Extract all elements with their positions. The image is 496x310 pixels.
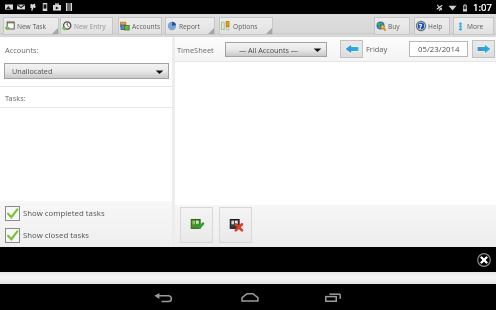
button[interactable]: ?	[414, 17, 450, 35]
staticText: Friday	[366, 44, 388, 54]
button[interactable]: New Entry	[60, 17, 113, 35]
button[interactable]: 05/23/2014	[409, 41, 468, 57]
button[interactable]: Home	[240, 284, 260, 310]
button[interactable]: Start timer	[180, 207, 213, 243]
button[interactable]: — All Accounts —	[225, 42, 327, 57]
staticText: Unallocated	[12, 66, 53, 76]
staticText: ?	[419, 22, 423, 31]
staticText: Show completed tasks	[23, 208, 105, 219]
staticText: — All Accounts —	[239, 45, 299, 55]
button[interactable]: Report	[165, 17, 215, 35]
staticText: Show closed tasks	[23, 230, 90, 241]
button[interactable]: Show completed tasks	[5, 206, 172, 221]
button[interactable]: Accounts	[118, 17, 162, 35]
button[interactable]: New Task	[3, 17, 59, 35]
staticText: Accounts	[132, 22, 161, 31]
staticText: TimeSheet	[177, 45, 214, 55]
staticText: New Entry	[74, 22, 106, 31]
button[interactable]: More	[453, 17, 494, 35]
button[interactable]: Recents	[323, 284, 343, 310]
button[interactable]: Back	[153, 284, 173, 310]
staticText: Report	[179, 22, 200, 31]
button[interactable]: Show closed tasks	[5, 228, 172, 243]
button[interactable]: Next day	[472, 40, 495, 58]
button[interactable]: Stop timer	[219, 207, 252, 243]
staticText: 1:07	[473, 1, 492, 14]
staticText: Help	[428, 22, 443, 31]
staticText: 05/23/2014	[418, 44, 460, 55]
button[interactable]: Unallocated	[4, 63, 169, 79]
button[interactable]: Previous day	[340, 40, 363, 58]
staticText: More	[467, 22, 484, 31]
staticText: Tasks:	[5, 93, 26, 103]
button[interactable]: Buy	[374, 17, 410, 35]
staticText: New Task	[17, 22, 47, 31]
staticText: Buy	[388, 22, 400, 31]
staticText: Accounts:	[5, 45, 39, 55]
staticText: Options	[233, 22, 258, 31]
button[interactable]: Options	[219, 17, 273, 35]
button[interactable]: Close ad	[477, 253, 491, 267]
